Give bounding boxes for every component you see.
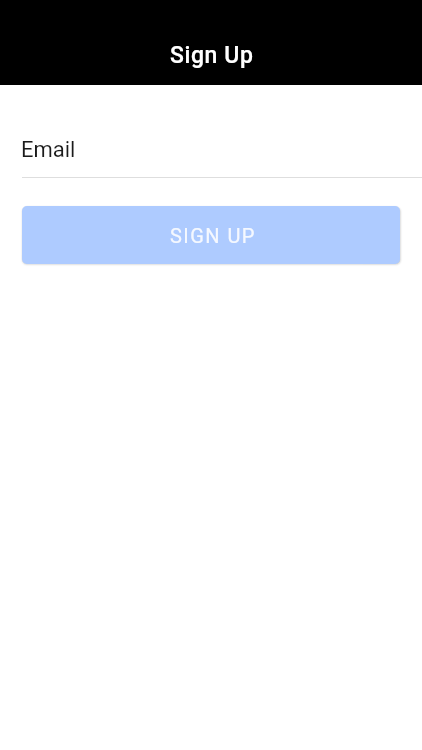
- staticText: SIGN UP: [170, 224, 256, 247]
- button[interactable]: Email: [0, 110, 422, 178]
- staticText: Sign Up: [170, 42, 254, 69]
- button[interactable]: Sign up: [22, 206, 400, 264]
- staticText: Email: [21, 137, 76, 163]
